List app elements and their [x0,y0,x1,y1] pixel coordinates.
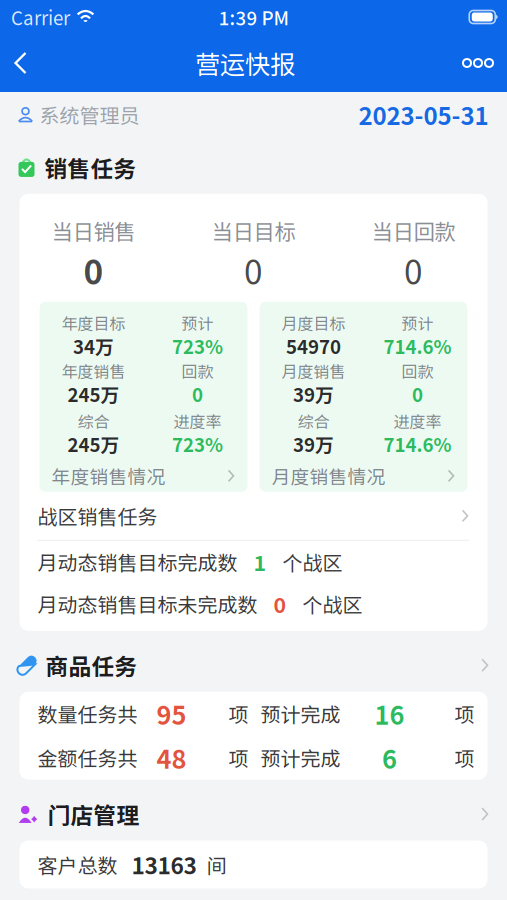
staticText: 个战区 [302,589,362,618]
staticText: 1 [253,546,266,577]
staticText: 723% [172,430,223,457]
staticText: 商品任务 [45,649,137,682]
staticText: 销售任务 [44,151,136,184]
staticText: 54970 [286,332,341,359]
staticText: 34万 [73,332,114,359]
staticText: 项 [454,699,474,728]
staticText: 0 [273,588,286,619]
staticText: 月度目标 [281,311,345,334]
staticText: 39万 [293,430,334,457]
staticText: 预计 [401,311,433,334]
staticText: 项 [228,743,248,772]
staticText: 0 [192,380,203,407]
staticText: 723% [172,332,223,359]
staticText: 16 [374,695,404,732]
staticText: 金额任务共 [37,743,137,772]
staticText: 项 [454,743,474,772]
staticText: 2023-05-31 [358,97,488,132]
staticText: 项 [228,699,248,728]
staticText: 回款 [181,359,213,382]
staticText: 预计完成 [260,699,340,728]
staticText: 1:39 PM [218,3,288,30]
staticText: 0 [83,246,103,294]
staticText: 间 [206,850,226,879]
staticText: 年度销售 [61,359,125,382]
staticText: 13163 [131,848,196,881]
staticText: 综合 [77,409,109,432]
staticText: 年度目标 [61,311,125,334]
staticText: 714.6% [383,332,451,359]
staticText: 进度率 [393,409,441,432]
button[interactable]: 月度销售情况 [259,458,467,494]
staticText: 当日销售 [51,215,135,246]
staticText: Carrier [11,3,70,30]
staticText: 714.6% [383,430,451,457]
staticText: 39万 [293,380,334,407]
staticText: 0 [412,380,423,407]
staticText: 0 [404,246,423,294]
staticText: 年度销售情况 [51,462,165,489]
button[interactable]: 门店管理 [0,780,507,840]
staticText: 月动态销售目标完成数 [37,547,237,576]
button[interactable]: 战区销售任务 [19,492,487,540]
staticText: 当日目标 [211,215,295,246]
staticText: 综合 [297,409,329,432]
staticText: 数量任务共 [37,699,137,728]
button[interactable]: 年度销售情况 [39,458,247,494]
staticText: 6 [382,739,397,776]
staticText: 月度销售情况 [271,462,385,489]
staticText: 回款 [401,359,433,382]
staticText: 营运快报 [195,45,295,81]
button[interactable]: Back [0,41,41,85]
staticText: 门店管理 [47,798,139,830]
button[interactable]: More [449,41,507,85]
staticText: 预计 [181,311,213,334]
staticText: 245万 [67,430,119,457]
staticText: 个战区 [282,547,342,576]
staticText: 客户总数 [37,850,117,879]
staticText: 48 [156,739,186,776]
staticText: 0 [244,246,263,294]
staticText: 当日回款 [371,215,455,246]
staticText: 月度销售 [281,359,345,382]
staticText: 245万 [67,380,119,407]
button[interactable]: 商品任务 [0,631,507,692]
staticText: 进度率 [173,409,221,432]
staticText: 战区销售任务 [37,501,157,530]
staticText: 预计完成 [260,743,340,772]
staticText: 月动态销售目标未完成数 [37,589,257,618]
staticText: 95 [156,695,186,732]
staticText: 系统管理员 [39,100,139,129]
